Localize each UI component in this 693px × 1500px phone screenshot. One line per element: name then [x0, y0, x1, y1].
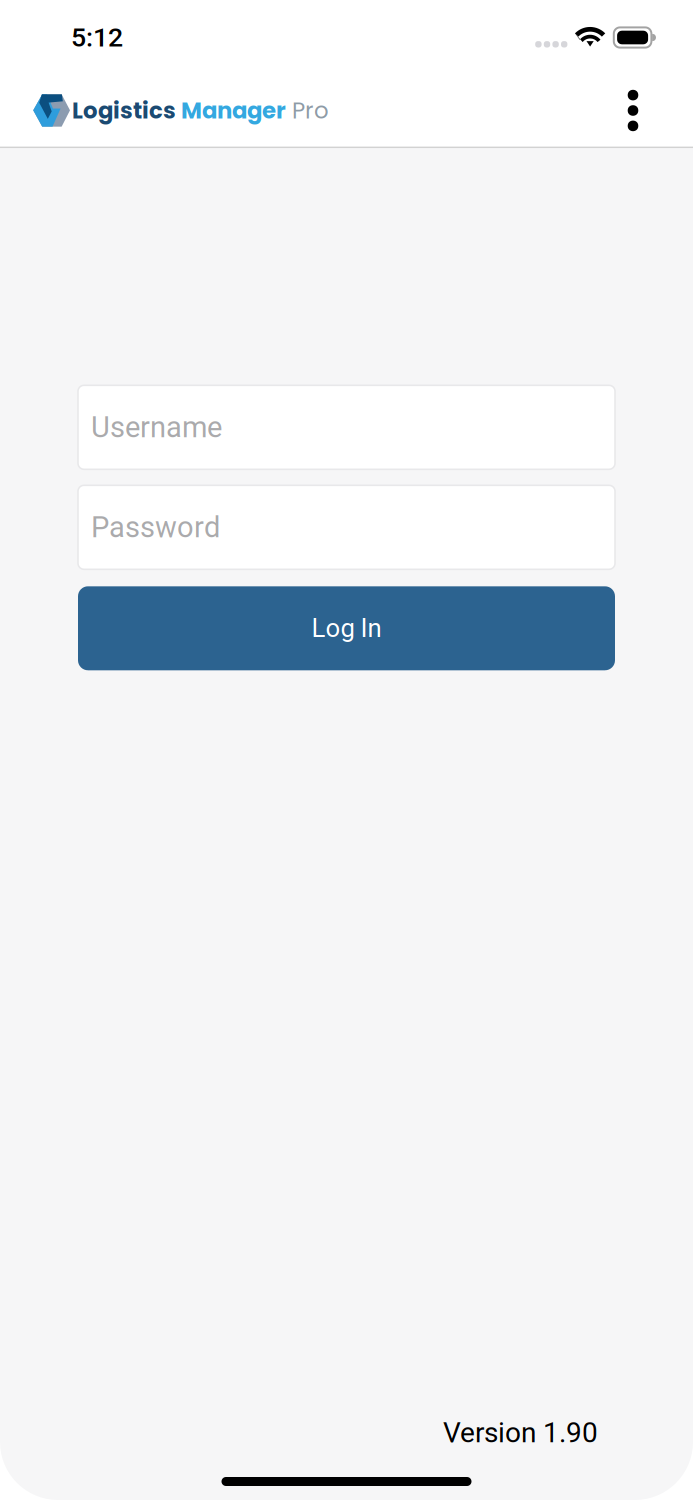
staticText: 5:12	[71, 22, 123, 53]
staticText: Log In	[311, 613, 381, 643]
button[interactable]: Username	[78, 385, 615, 469]
staticText: Username	[91, 410, 222, 444]
button[interactable]: More options	[602, 75, 664, 146]
staticText: Version 1.90	[443, 1416, 598, 1449]
staticText: Manager	[176, 94, 286, 126]
button[interactable]: Password	[78, 485, 615, 569]
staticText: Password	[91, 510, 220, 544]
staticText: Pro	[286, 94, 329, 126]
button[interactable]: Log In	[78, 586, 615, 670]
staticText: Logistics	[72, 94, 176, 126]
